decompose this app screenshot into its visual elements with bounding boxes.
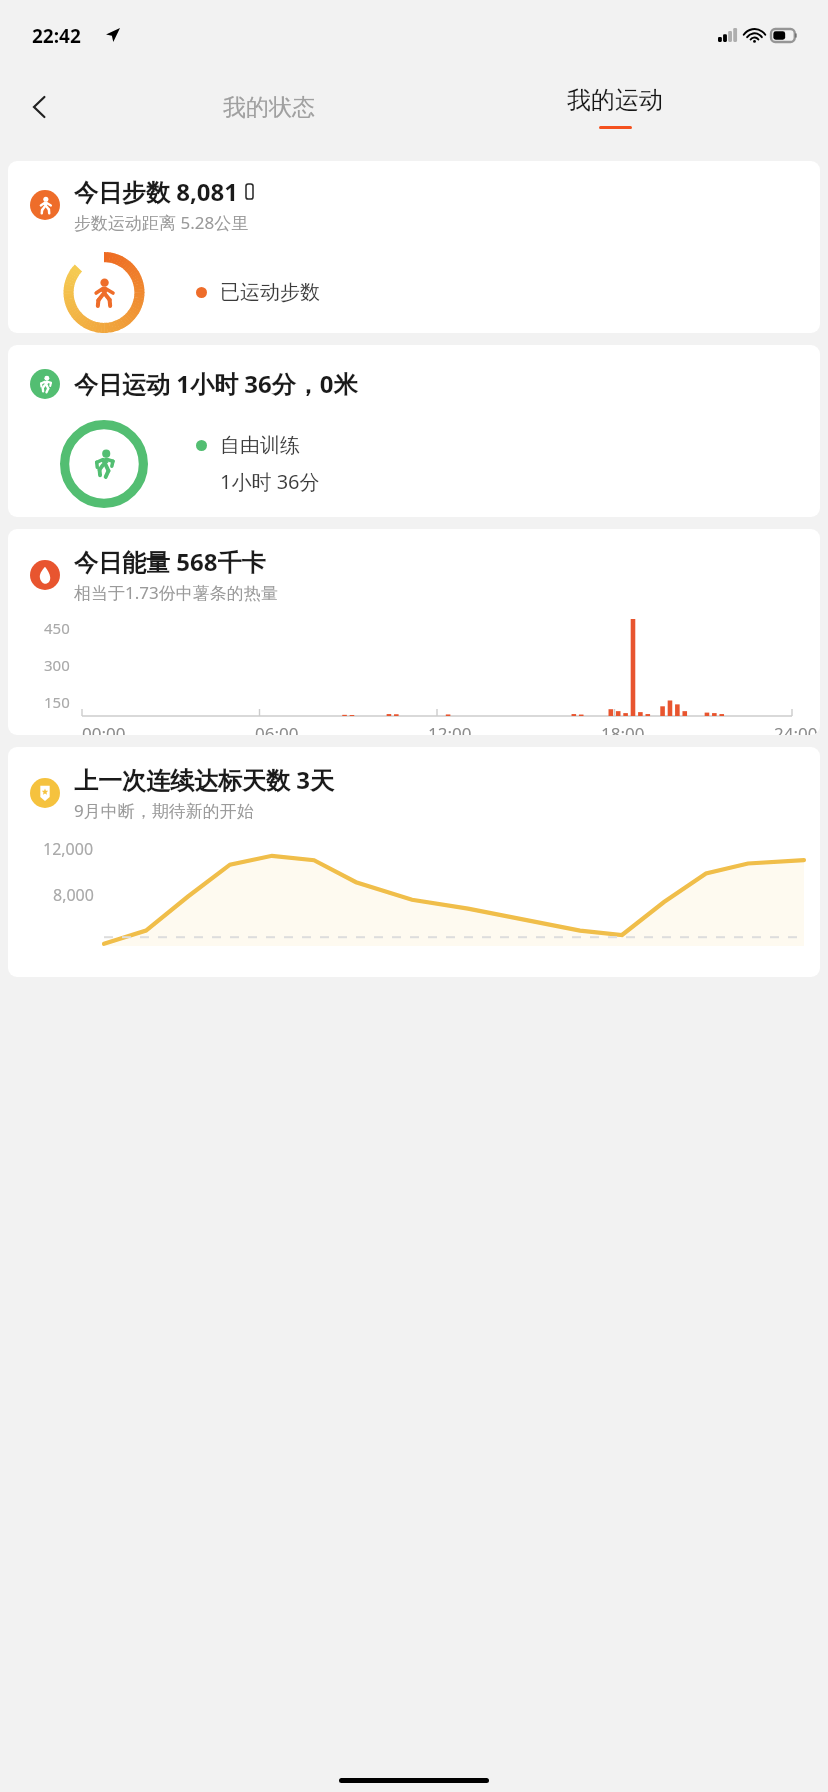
staticText: 相当于1.73份中薯条的热量 [74,581,278,604]
staticText: 已运动步数 [220,280,320,305]
staticText: 18:00 [601,722,645,735]
staticText: 今日步数 8,081 [74,175,238,208]
staticText: 300 [44,655,70,675]
staticText: 00:00 [82,722,126,735]
staticText: 22:42 [32,23,81,49]
button[interactable]: 我的状态 [96,66,442,148]
button[interactable]: 今日运动 1小时 36分，0米 [8,345,820,517]
staticText: 24:00 [774,722,818,735]
button[interactable]: 上一次连续达标天数 3天 [8,747,820,977]
staticText: 今日运动 1小时 36分，0米 [74,367,358,400]
button[interactable]: Back [14,81,66,133]
staticText: 450 [44,618,70,638]
staticText: 我的状态 [223,93,315,122]
staticText: 9月中断，期待新的开始 [74,799,254,822]
staticText: 上一次连续达标天数 3天 [74,763,334,796]
button[interactable]: 我的运动 [442,66,788,148]
staticText: 我的运动 [567,85,663,115]
button[interactable]: 今日能量 568千卡 [8,529,820,735]
staticText: 12:00 [428,722,472,735]
staticText: 步数运动距离 5.28公里 [74,211,249,234]
staticText: 150 [44,692,70,712]
staticText: 06:00 [255,722,299,735]
staticText: 1小时 36分 [220,468,320,495]
staticText: 8,000 [53,884,94,906]
staticText: 今日能量 568千卡 [74,545,266,578]
staticText: 自由训练 [220,433,300,458]
staticText: 12,000 [43,838,94,860]
button[interactable]: 今日步数 8,081 [8,161,820,333]
